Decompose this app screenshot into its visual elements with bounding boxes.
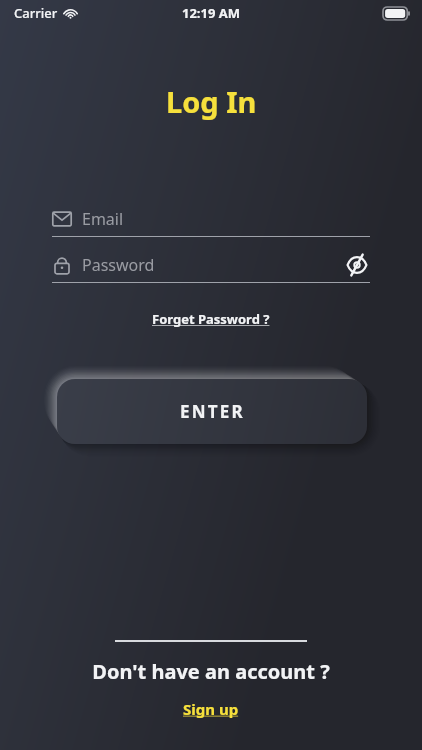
button[interactable]: Email	[52, 202, 370, 237]
button[interactable]: Password	[52, 248, 370, 283]
button[interactable]: Sign up	[175, 697, 247, 721]
staticText: Don't have an account ?	[92, 658, 330, 685]
staticText: Sign up	[183, 699, 239, 719]
staticText: 12:19 AM	[182, 4, 241, 22]
staticText: Log In	[166, 82, 257, 121]
button[interactable]: Forget Password ?	[146, 307, 276, 331]
staticText: Forget Password ?	[152, 310, 270, 328]
staticText: ENTER	[180, 400, 245, 423]
staticText: Email	[82, 208, 124, 230]
staticText: Password	[82, 254, 155, 276]
button[interactable]: Toggle password visibility	[344, 252, 370, 278]
staticText: Carrier	[14, 4, 58, 22]
button[interactable]: ENTER	[57, 379, 367, 444]
